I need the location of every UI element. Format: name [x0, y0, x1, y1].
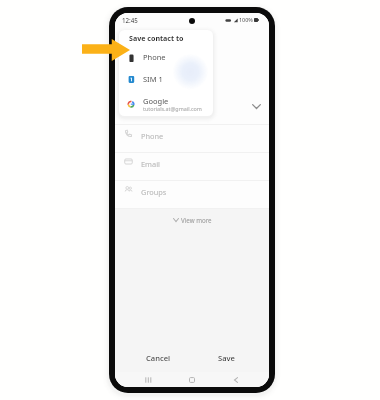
- staticText: Groups: [141, 187, 167, 197]
- button[interactable]: [119, 69, 213, 90]
- button[interactable]: [115, 152, 269, 180]
- staticText: 100%: [239, 16, 253, 23]
- button[interactable]: Back: [225, 372, 247, 387]
- staticText: View more: [181, 216, 212, 224]
- staticText: 12:45: [122, 16, 138, 24]
- staticText: Email: [141, 159, 160, 169]
- staticText: tutorials.at@gmail.com: [143, 105, 202, 112]
- button[interactable]: [119, 47, 213, 68]
- staticText: Save contact to: [129, 33, 184, 43]
- staticText: Save: [218, 353, 235, 363]
- staticText: Phone: [141, 131, 164, 141]
- button[interactable]: [115, 96, 269, 124]
- button[interactable]: [115, 180, 269, 208]
- staticText: Google: [143, 96, 169, 106]
- other: Expand account list: [252, 104, 261, 109]
- staticText: Phone: [143, 52, 166, 62]
- button[interactable]: [119, 93, 213, 114]
- button[interactable]: Save: [196, 348, 256, 367]
- button[interactable]: Cancel: [128, 348, 188, 367]
- staticText: SIM 1: [143, 74, 163, 84]
- button[interactable]: [115, 124, 269, 152]
- staticText: Cancel: [146, 353, 171, 363]
- button[interactable]: Home: [181, 372, 203, 387]
- button[interactable]: View more: [115, 211, 269, 228]
- button[interactable]: Recent apps: [137, 372, 159, 387]
